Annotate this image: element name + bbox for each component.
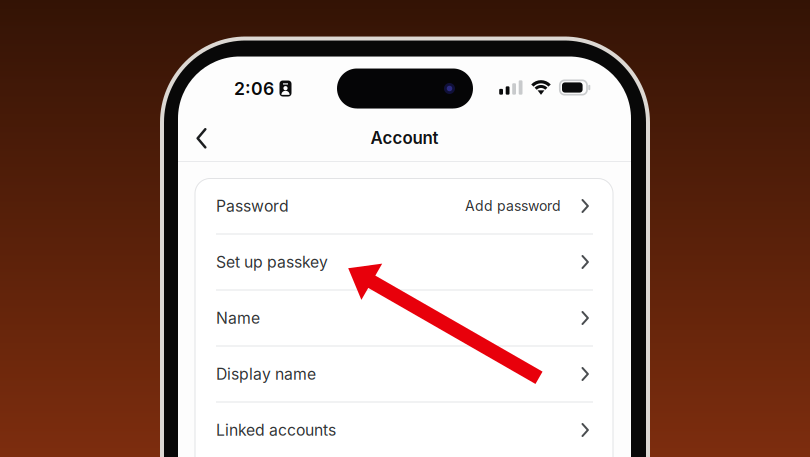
staticText: Password — [216, 196, 289, 215]
staticText: 2:06 — [234, 78, 274, 99]
staticText: Name — [216, 308, 260, 327]
staticText: Linked accounts — [216, 420, 336, 439]
button[interactable]: Name — [195, 290, 613, 345]
button[interactable]: Set up passkey — [195, 234, 613, 289]
button[interactable]: Password — [195, 178, 613, 233]
staticText: Set up passkey — [216, 252, 328, 271]
button[interactable]: Back — [185, 117, 218, 160]
button[interactable]: Linked accounts — [195, 402, 613, 457]
staticText: Display name — [216, 364, 316, 383]
button[interactable]: Display name — [195, 346, 613, 401]
staticText: Add password — [465, 197, 561, 214]
staticText: Account — [370, 128, 438, 148]
